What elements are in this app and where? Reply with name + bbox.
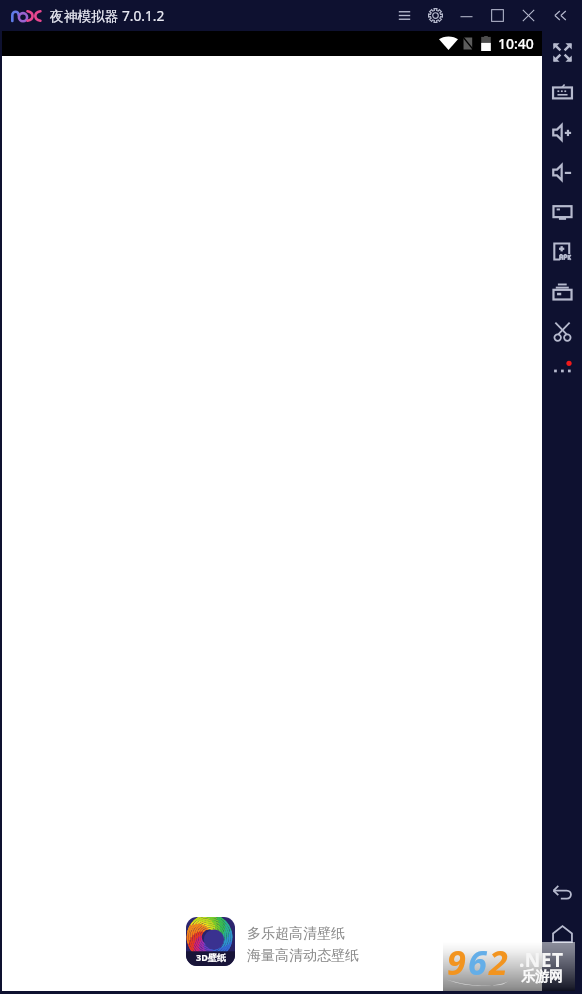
button[interactable]: Back [542, 873, 582, 913]
button[interactable]: 3D壁纸 [186, 917, 359, 966]
staticText: 6 [468, 939, 489, 985]
staticText: 9 [447, 939, 468, 985]
button[interactable]: Keyboard [542, 72, 582, 112]
staticText: 乐游网 [521, 968, 563, 986]
button[interactable]: Cut [542, 311, 582, 351]
button[interactable]: Fullscreen [542, 32, 582, 72]
button[interactable]: Volume up [542, 112, 582, 152]
button[interactable]: Volume down [542, 152, 582, 192]
staticText: 海量高清动态壁纸 [247, 947, 359, 965]
button[interactable]: Maximize [482, 0, 513, 31]
button[interactable]: Collapse toolbar [544, 0, 575, 31]
button[interactable]: Menu [389, 0, 420, 31]
staticText: 10:40 [498, 34, 534, 53]
staticText: 2 [489, 939, 510, 985]
button[interactable]: Screenshot [542, 192, 582, 232]
button[interactable]: Install APK [542, 231, 582, 271]
button[interactable]: Home [542, 914, 582, 954]
button[interactable]: More options [542, 347, 582, 387]
button[interactable]: Close [513, 0, 544, 31]
button[interactable]: Settings [420, 0, 451, 31]
staticText: 多乐超高清壁纸 [247, 925, 345, 943]
button[interactable]: Minimize [451, 0, 482, 31]
staticText: 夜神模拟器 7.0.1.2 [50, 6, 165, 25]
button[interactable]: Shared folder [542, 271, 582, 311]
staticText: 3D壁纸 [196, 951, 226, 963]
staticText: .NET [519, 947, 564, 973]
